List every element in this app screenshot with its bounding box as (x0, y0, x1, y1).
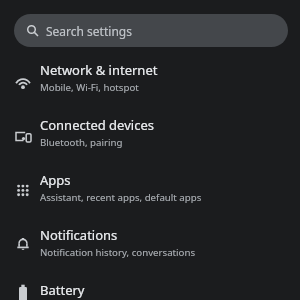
button[interactable]: Apps (0, 163, 300, 218)
button[interactable]: Notifications (0, 218, 300, 273)
button[interactable]: Search settings (14, 14, 288, 47)
button[interactable]: Connected devices (0, 108, 300, 163)
staticText: Bluetooth, pairing (40, 136, 123, 149)
staticText: Apps (40, 171, 71, 189)
staticText: Mobile, Wi-Fi, hotspot (40, 81, 139, 94)
staticText: Battery (40, 281, 85, 299)
staticText: Connected devices (40, 116, 154, 134)
staticText: Notifications (40, 226, 118, 244)
staticText: Search settings (46, 23, 132, 39)
staticText: Network & internet (40, 61, 158, 79)
staticText: Assistant, recent apps, default apps (40, 191, 202, 204)
staticText: Notification history, conversations (40, 246, 196, 259)
button[interactable]: Network & internet (0, 53, 300, 108)
button[interactable]: Battery (0, 273, 300, 300)
